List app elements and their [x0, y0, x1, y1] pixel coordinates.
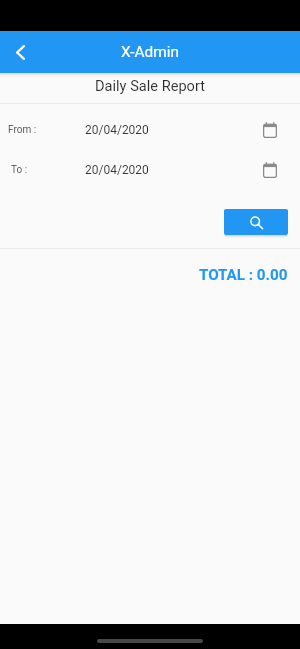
staticText: TOTAL : 0.00 [199, 266, 288, 284]
button[interactable]: Choose From : date [259, 119, 281, 141]
button[interactable]: From : [0, 110, 300, 149]
staticText: 20/04/2020 [85, 123, 149, 137]
button[interactable]: Back [0, 31, 40, 73]
staticText: From : [8, 124, 37, 136]
button[interactable]: Choose To : date [259, 159, 281, 181]
button[interactable]: To : [0, 150, 300, 189]
staticText: Daily Sale Report [95, 77, 205, 94]
staticText: 20/04/2020 [85, 163, 149, 177]
staticText: To : [11, 164, 28, 176]
staticText: X-Admin [121, 43, 180, 61]
button[interactable]: Search [224, 209, 288, 235]
